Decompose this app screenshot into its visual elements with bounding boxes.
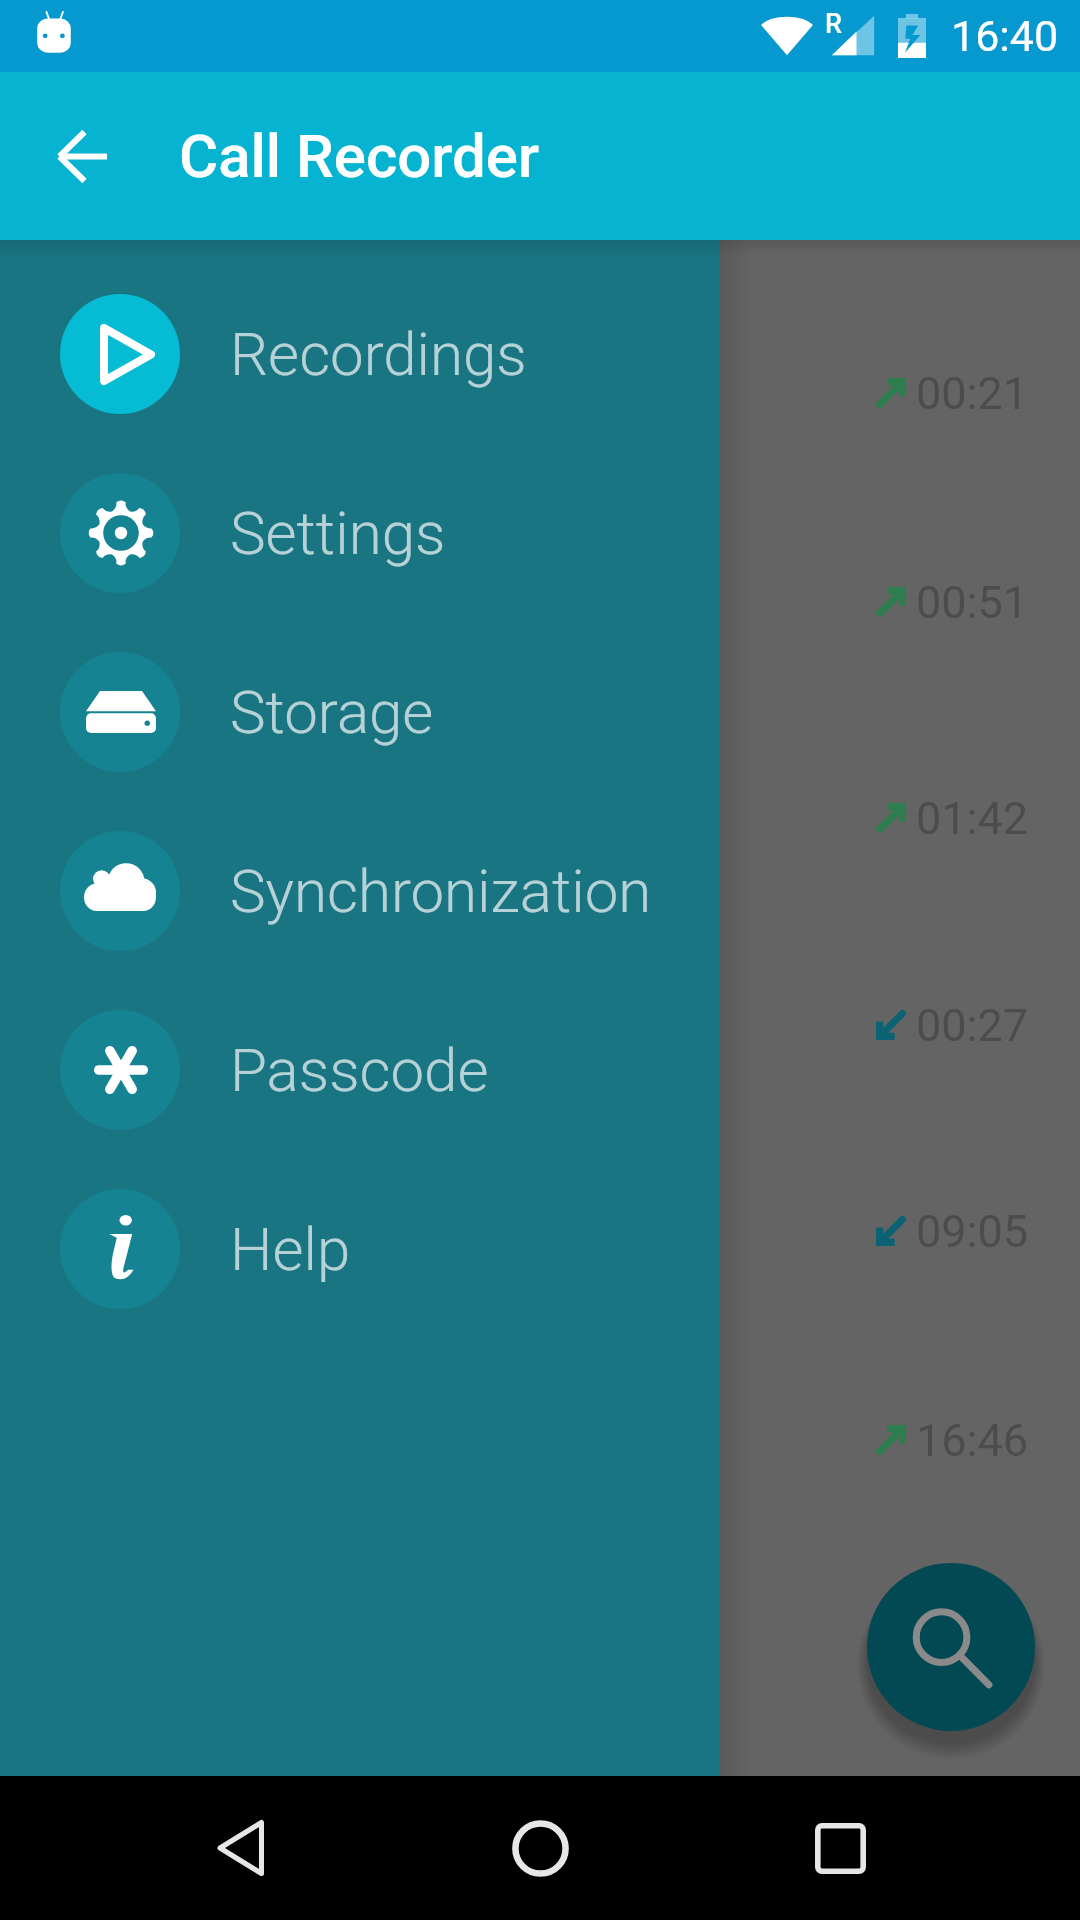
staticText: Settings (230, 498, 446, 568)
button[interactable]: Recent apps (792, 1800, 888, 1896)
button[interactable]: Search (867, 1563, 1035, 1731)
staticText: 16:40 (951, 11, 1059, 61)
staticText: 00:21 (916, 367, 1029, 419)
button[interactable]: Recordings (0, 265, 720, 443)
staticText: 16:46 (916, 1414, 1029, 1466)
staticText: 01:42 (916, 792, 1029, 844)
button[interactable]: Synchronization (0, 802, 720, 980)
button[interactable]: Settings (0, 444, 720, 622)
staticText: Passcode (230, 1035, 489, 1105)
staticText: 00:51 (916, 576, 1029, 628)
button[interactable]: Help (0, 1160, 720, 1338)
button[interactable]: Passcode (0, 981, 720, 1159)
staticText: Storage (230, 677, 434, 747)
staticText: Help (230, 1214, 351, 1284)
staticText: Call Recorder (179, 121, 540, 191)
button[interactable]: Home (492, 1800, 588, 1896)
staticText: 00:27 (916, 999, 1029, 1051)
button[interactable]: Storage (0, 623, 720, 801)
button[interactable]: Navigate up (34, 108, 130, 204)
staticText: Recordings (230, 319, 527, 389)
button[interactable]: Back (192, 1800, 288, 1896)
staticText: R (825, 8, 842, 40)
staticText: Synchronization (230, 856, 652, 926)
staticText: 09:05 (916, 1205, 1029, 1257)
